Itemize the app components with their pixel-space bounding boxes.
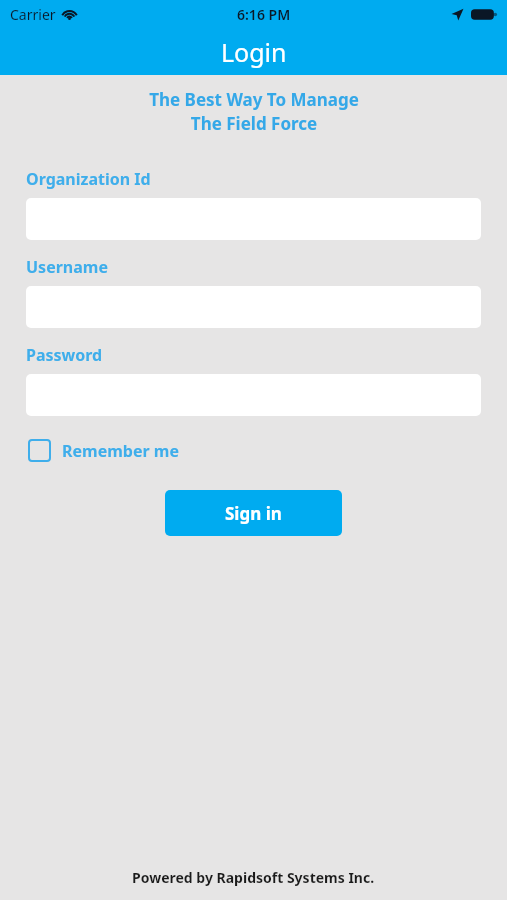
button[interactable]: Remember me [27,437,180,464]
staticText: Sign in [225,502,282,525]
staticText: Remember me [62,440,179,462]
staticText: Username [26,256,108,278]
staticText: The Best Way To Manage The Field Force [149,88,359,135]
staticText: Powered by Rapidsoft Systems Inc. [132,868,375,887]
staticText: Password [26,344,103,366]
button[interactable]: Sign in [165,490,342,536]
staticText: Organization Id [26,168,151,190]
staticText: 6:16 PM [237,5,291,24]
staticText: Login [221,35,287,69]
staticText: Carrier [10,5,56,24]
